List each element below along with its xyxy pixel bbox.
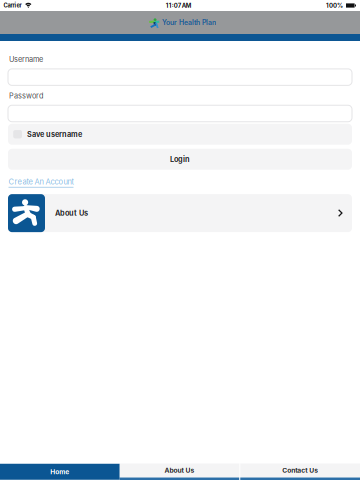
staticText: About Us	[165, 466, 195, 474]
button[interactable]: Login	[8, 149, 352, 170]
button[interactable]: Save username	[8, 124, 352, 145]
staticText: Carrier	[3, 2, 21, 9]
staticText: Password	[9, 91, 43, 100]
staticText: 11:07 AM	[166, 2, 192, 9]
staticText: Username	[9, 55, 43, 64]
staticText: Your Health Plan	[162, 18, 216, 27]
staticText: Contact Us	[282, 466, 318, 474]
button[interactable]: Contact Us	[240, 463, 360, 480]
staticText: Home	[50, 468, 69, 476]
button[interactable]: About Us	[120, 463, 239, 480]
staticText: About Us	[55, 209, 88, 218]
button[interactable]: About Us	[8, 194, 352, 232]
button[interactable]: Home	[0, 464, 120, 480]
staticText: Save username	[27, 130, 82, 139]
staticText: 100%	[326, 2, 343, 9]
staticText: Login	[170, 155, 190, 164]
staticText: Create An Account	[8, 177, 73, 186]
button[interactable]: Create An Account	[8, 177, 73, 188]
